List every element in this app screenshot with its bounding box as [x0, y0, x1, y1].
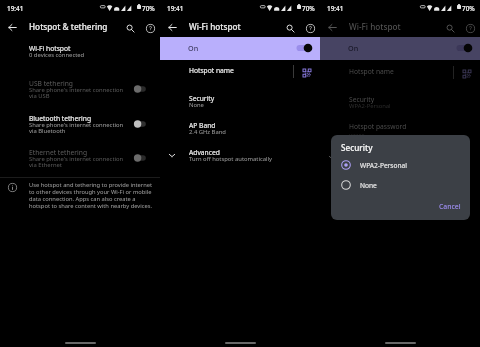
button[interactable]: Back [5, 20, 19, 34]
button[interactable]: None [331, 178, 470, 192]
staticText: .......... [349, 129, 365, 137]
button[interactable]: Advanced [160, 148, 320, 164]
staticText: USB tethering [29, 79, 73, 88]
button[interactable]: Help [303, 21, 317, 35]
staticText: Wi-Fi hotspot [189, 21, 241, 32]
staticText: On [348, 43, 359, 53]
staticText: 2.4 GHz Band [189, 128, 226, 136]
staticText: None [189, 101, 204, 109]
staticText: Hotspot & tethering [29, 21, 108, 32]
button[interactable]: Share hotspot QR code [303, 69, 311, 77]
staticText: WPA2-Personal [349, 102, 391, 110]
staticText: 19:41 [327, 4, 344, 13]
button[interactable]: Help [463, 21, 477, 35]
staticText: Hotspot password [349, 122, 407, 131]
staticText: Share phone's internet connection [29, 121, 124, 129]
button[interactable]: Wi-Fi hotspot [0, 44, 160, 60]
button[interactable]: USB tethering [0, 79, 160, 103]
staticText: Hotspot name [349, 67, 394, 76]
staticText: None [360, 181, 377, 190]
staticText: Share phone's internet connection [29, 86, 124, 94]
button[interactable]: Security [160, 94, 320, 109]
staticText: Turn off hotspot automatically [189, 155, 272, 163]
button[interactable]: Search [283, 21, 297, 35]
button[interactable]: Security [320, 95, 480, 110]
staticText: Security [189, 94, 215, 103]
button[interactable]: On [160, 37, 320, 60]
staticText: Security [341, 142, 373, 153]
button[interactable]: Ethernet tethering [0, 148, 160, 172]
staticText: Bluetooth tethering [29, 114, 92, 123]
staticText: via Bluetooth [29, 127, 66, 135]
button[interactable]: Search [123, 21, 137, 35]
staticText: 70% [462, 4, 475, 13]
button[interactable]: Hotspot password [320, 122, 480, 137]
staticText: 19:41 [7, 4, 24, 13]
staticText: Use hotspot and tethering to provide int… [29, 181, 153, 210]
staticText: AP Band [189, 121, 216, 130]
staticText: 0 devices connected [29, 51, 85, 59]
button[interactable]: Hotspot name [160, 65, 320, 79]
staticText: Cancel [439, 202, 461, 211]
button[interactable]: Bluetooth tethering [0, 114, 160, 138]
staticText: WPA2-Personal [360, 161, 407, 170]
staticText: Share phone's internet connection [29, 155, 124, 163]
button[interactable]: Back [325, 20, 339, 34]
staticText: via USB [29, 92, 50, 100]
staticText: 70% [142, 4, 155, 13]
staticText: Advanced [189, 148, 220, 157]
button[interactable]: Search [443, 21, 457, 35]
button[interactable]: AP Band [160, 121, 320, 136]
staticText: Security [349, 95, 375, 104]
button[interactable]: WPA2-Personal [331, 158, 470, 172]
staticText: Wi-Fi hotspot [349, 21, 401, 32]
button[interactable]: Back [165, 20, 179, 34]
button[interactable]: Cancel [437, 200, 463, 213]
staticText: Ethernet tethering [29, 148, 88, 157]
staticText: 70% [302, 4, 315, 13]
staticText: Wi-Fi hotspot [29, 44, 71, 53]
staticText: On [188, 43, 199, 53]
staticText: 19:41 [167, 4, 184, 13]
staticText: via Ethernet [29, 161, 62, 169]
button[interactable]: Help [143, 21, 157, 35]
staticText: Hotspot name [189, 66, 234, 75]
